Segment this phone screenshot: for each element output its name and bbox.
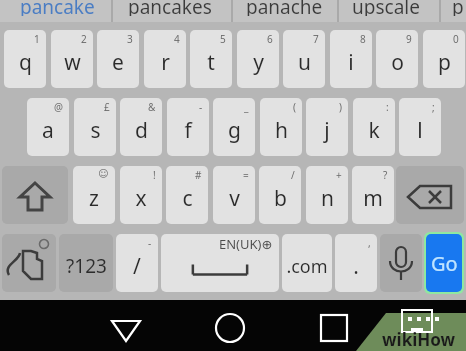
button[interactable]: 6	[237, 30, 279, 88]
button[interactable]: &	[120, 98, 162, 156]
button[interactable]: =	[213, 166, 255, 224]
staticText: EN(UK)⊕	[219, 235, 273, 253]
staticText: Go	[431, 250, 458, 277]
button[interactable]: Back	[108, 310, 144, 346]
staticText: panache	[246, 0, 323, 16]
staticText: pancakes	[128, 0, 212, 16]
button[interactable]: Shift	[2, 166, 68, 224]
button[interactable]: 7	[283, 30, 325, 88]
staticText: d	[135, 116, 148, 145]
button[interactable]: Voice input	[380, 234, 422, 292]
button[interactable]: Home	[212, 310, 248, 346]
button[interactable]: panache	[246, 0, 323, 16]
staticText: 7	[313, 32, 319, 46]
staticText: /	[291, 168, 295, 182]
staticText: pancake	[20, 0, 95, 16]
button[interactable]: Space	[161, 234, 279, 292]
staticText: t	[207, 48, 215, 77]
button[interactable]: ?123	[59, 234, 113, 292]
staticText: ?	[383, 168, 388, 182]
staticText: e	[112, 48, 124, 77]
staticText: )	[339, 100, 342, 114]
button[interactable]: Recent apps	[316, 310, 352, 346]
button[interactable]: Handwriting input	[2, 234, 56, 292]
staticText: h	[275, 116, 288, 145]
staticText: x	[135, 184, 147, 213]
button[interactable]: ?	[352, 166, 394, 224]
button[interactable]: #	[166, 166, 208, 224]
button[interactable]: pancakes	[128, 0, 212, 16]
button[interactable]: -	[116, 234, 158, 292]
staticText: f	[184, 116, 192, 145]
staticText: &	[148, 100, 156, 114]
button[interactable]: 4	[144, 30, 186, 88]
button[interactable]: +	[306, 166, 348, 224]
staticText: c	[182, 184, 193, 213]
staticText: r	[161, 48, 170, 77]
button[interactable]: 5	[190, 30, 232, 88]
staticText: +	[336, 168, 342, 182]
button[interactable]: pancake	[20, 0, 95, 16]
staticText: 1	[34, 32, 40, 46]
button[interactable]: ;	[399, 98, 441, 156]
button[interactable]: )	[306, 98, 348, 156]
button[interactable]: Backspace	[396, 166, 464, 224]
staticText: 5	[220, 32, 226, 46]
staticText: 6	[267, 32, 273, 46]
staticText: -	[199, 100, 203, 114]
button[interactable]: 9	[376, 30, 418, 88]
button[interactable]: £	[74, 98, 116, 156]
staticText: @	[54, 100, 63, 114]
button[interactable]: (	[260, 98, 302, 156]
staticText: g	[228, 116, 241, 145]
staticText: -	[148, 236, 152, 250]
staticText: k	[368, 116, 380, 145]
staticText: .com	[286, 254, 328, 279]
staticText: wikiHow	[382, 328, 456, 351]
staticText: ☺	[98, 168, 109, 180]
button[interactable]: 8	[330, 30, 372, 88]
button[interactable]: !	[120, 166, 162, 224]
staticText: (	[293, 100, 296, 114]
staticText: upscale	[352, 0, 420, 16]
staticText: v	[229, 184, 240, 213]
staticText: p	[438, 48, 451, 77]
button[interactable]: /	[259, 166, 301, 224]
staticText: u	[298, 48, 311, 77]
staticText: m	[363, 184, 383, 213]
staticText: ,	[368, 236, 371, 250]
button[interactable]: ,	[335, 234, 377, 292]
staticText: ?123	[66, 253, 107, 279]
staticText: i	[348, 48, 354, 77]
button[interactable]: upscale	[352, 0, 420, 16]
staticText: b	[274, 184, 287, 213]
staticText: 8	[360, 32, 366, 46]
button[interactable]: _	[213, 98, 255, 156]
staticText: #	[195, 168, 202, 182]
button[interactable]: ☺	[73, 166, 115, 224]
button[interactable]: p	[452, 0, 464, 16]
staticText: 2	[81, 32, 87, 46]
button[interactable]: @	[27, 98, 69, 156]
staticText: =	[243, 168, 249, 182]
staticText: p	[452, 0, 464, 16]
staticText: !	[153, 168, 156, 182]
staticText: w	[64, 48, 81, 77]
button[interactable]: -	[167, 98, 209, 156]
staticText: .	[353, 252, 359, 281]
staticText: /	[133, 252, 141, 281]
button[interactable]: 0	[423, 30, 465, 88]
button[interactable]: 3	[97, 30, 139, 88]
button[interactable]: Go	[426, 234, 462, 292]
staticText: _	[244, 100, 249, 114]
staticText: 3	[127, 32, 133, 46]
staticText: £	[104, 100, 110, 114]
button[interactable]: .com	[282, 234, 332, 292]
staticText: 9	[406, 32, 412, 46]
staticText: q	[19, 48, 32, 77]
button[interactable]: 2	[51, 30, 93, 88]
button[interactable]: Switch keyboard	[400, 308, 434, 334]
button[interactable]: :	[353, 98, 395, 156]
staticText: z	[89, 184, 99, 213]
button[interactable]: 1	[4, 30, 46, 88]
